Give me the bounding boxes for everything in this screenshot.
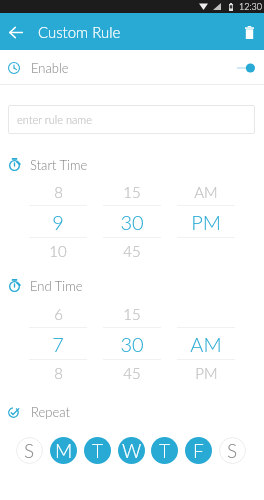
staticText: Enable: [31, 60, 69, 76]
staticText: F: [193, 439, 204, 462]
button[interactable]: 30: [95, 206, 169, 237]
staticText: 9: [52, 210, 64, 234]
staticText: S: [227, 439, 238, 462]
button[interactable]: Enable: [0, 50, 264, 85]
button[interactable]: 15: [95, 300, 169, 327]
staticText: M: [55, 439, 73, 462]
staticText: 15: [123, 183, 141, 201]
button[interactable]: AM: [169, 328, 243, 359]
staticText: Repeat: [31, 404, 70, 419]
button[interactable]: 9: [21, 206, 95, 237]
staticText: enter rule name: [17, 113, 92, 126]
staticText: W: [122, 439, 142, 462]
button[interactable]: S: [16, 437, 43, 464]
staticText: 30: [120, 332, 144, 356]
button[interactable]: T: [151, 437, 178, 464]
staticText: 10: [49, 242, 67, 260]
button[interactable]: 6: [21, 300, 95, 327]
staticText: S: [24, 439, 35, 462]
staticText: 7: [52, 332, 64, 356]
staticText: T: [159, 439, 171, 462]
staticText: AM: [190, 332, 222, 356]
staticText: Start Time: [30, 157, 88, 172]
button[interactable]: PM: [169, 360, 243, 386]
staticText: 45: [123, 242, 141, 260]
staticText: Custom Rule: [38, 23, 121, 41]
staticText: 15: [123, 305, 141, 323]
staticText: 6: [54, 305, 63, 323]
staticText: 8: [54, 183, 63, 201]
button[interactable]: 8: [21, 360, 95, 386]
button[interactable]: W: [118, 437, 145, 464]
staticText: 12:30: [239, 1, 263, 12]
button[interactable]: 7: [21, 328, 95, 359]
staticText: T: [92, 439, 104, 462]
button[interactable]: Delete: [235, 18, 263, 46]
staticText: 45: [123, 364, 141, 382]
button[interactable]: 30: [95, 328, 169, 359]
staticText: 8: [54, 364, 63, 382]
staticText: PM: [195, 364, 218, 382]
button[interactable]: 45: [95, 360, 169, 386]
button[interactable]: 8: [21, 178, 95, 205]
button[interactable]: T: [84, 437, 111, 464]
button[interactable]: AM: [169, 178, 243, 205]
button[interactable]: Back: [2, 18, 30, 46]
staticText: AM: [194, 183, 218, 201]
button[interactable]: enter rule name: [8, 105, 255, 134]
button[interactable]: 15: [95, 178, 169, 205]
button[interactable]: 10: [21, 238, 95, 264]
staticText: End Time: [30, 278, 83, 293]
staticText: PM: [191, 210, 221, 234]
staticText: 30: [120, 210, 144, 234]
button[interactable]: S: [219, 437, 246, 464]
button[interactable]: M: [50, 437, 77, 464]
button[interactable]: PM: [169, 206, 243, 237]
button[interactable]: F: [185, 437, 212, 464]
button[interactable]: 45: [95, 238, 169, 264]
